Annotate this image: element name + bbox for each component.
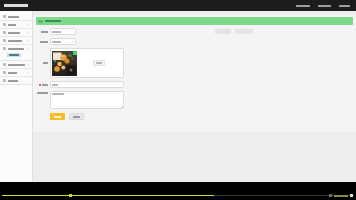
button[interactable]: Uploaded photo — [52, 51, 77, 76]
button[interactable] — [36, 17, 353, 25]
button[interactable] — [50, 38, 76, 45]
button[interactable] — [0, 61, 32, 68]
button[interactable] — [0, 52, 32, 58]
button[interactable] — [0, 45, 32, 52]
button[interactable] — [50, 81, 124, 88]
button[interactable] — [50, 113, 65, 120]
button[interactable]: Seek bar — [0, 192, 356, 198]
button[interactable] — [50, 91, 124, 109]
button[interactable] — [0, 29, 32, 36]
button[interactable] — [296, 5, 310, 7]
button[interactable] — [318, 5, 331, 7]
button[interactable] — [0, 77, 32, 84]
button[interactable] — [0, 69, 32, 76]
button[interactable] — [50, 28, 76, 35]
button[interactable] — [0, 37, 32, 44]
button[interactable] — [93, 60, 105, 66]
button[interactable] — [69, 113, 84, 120]
button[interactable] — [339, 5, 350, 7]
button[interactable] — [0, 13, 32, 20]
button[interactable] — [0, 21, 32, 28]
